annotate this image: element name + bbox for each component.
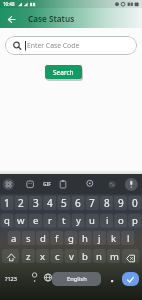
staticText: l: [127, 232, 130, 245]
staticText: h: [82, 232, 88, 245]
staticText: r: [48, 214, 52, 227]
staticText: 7: [89, 196, 95, 210]
button[interactable]: [122, 272, 139, 286]
staticText: 1: [4, 196, 10, 210]
staticText: Enter Case Code: [27, 41, 80, 50]
staticText: e: [33, 214, 39, 227]
button[interactable]: English: [52, 272, 101, 286]
staticText: u: [89, 214, 95, 227]
staticText: a: [11, 232, 17, 245]
staticText: i: [106, 214, 109, 227]
staticText: j: [98, 232, 101, 245]
staticText: w: [17, 214, 25, 227]
staticText: v: [69, 250, 74, 263]
staticText: 9: [118, 196, 124, 210]
staticText: p: [132, 214, 138, 227]
staticText: y: [76, 214, 81, 227]
staticText: b: [82, 250, 88, 263]
staticText: o: [118, 214, 124, 227]
staticText: ?123: [5, 275, 17, 282]
staticText: k: [111, 232, 117, 245]
staticText: Case Status: [28, 13, 75, 24]
staticText: 5: [61, 196, 67, 210]
staticText: d: [40, 232, 46, 245]
staticText: n: [96, 250, 102, 263]
staticText: Search: [53, 68, 74, 77]
staticText: z: [26, 250, 31, 263]
staticText: 4: [47, 196, 53, 210]
staticText: 8: [104, 196, 110, 210]
staticText: c: [55, 250, 60, 263]
staticText: 0: [132, 196, 138, 210]
staticText: 6: [75, 196, 81, 210]
staticText: f: [55, 232, 59, 245]
button[interactable]: Case Status: [0, 8, 142, 28]
staticText: 10:48: [3, 1, 15, 7]
staticText: English: [67, 275, 87, 283]
button[interactable]: Search: [45, 65, 82, 79]
staticText: GIF: [43, 181, 51, 188]
button[interactable]: Enter Case Code: [5, 36, 137, 55]
staticText: s: [26, 232, 31, 245]
staticText: 2: [18, 196, 24, 210]
staticText: t: [62, 214, 66, 227]
staticText: q: [4, 214, 10, 227]
staticText: m: [110, 250, 119, 263]
staticText: g: [68, 232, 74, 245]
staticText: x: [40, 250, 46, 263]
staticText: 3: [33, 196, 39, 210]
